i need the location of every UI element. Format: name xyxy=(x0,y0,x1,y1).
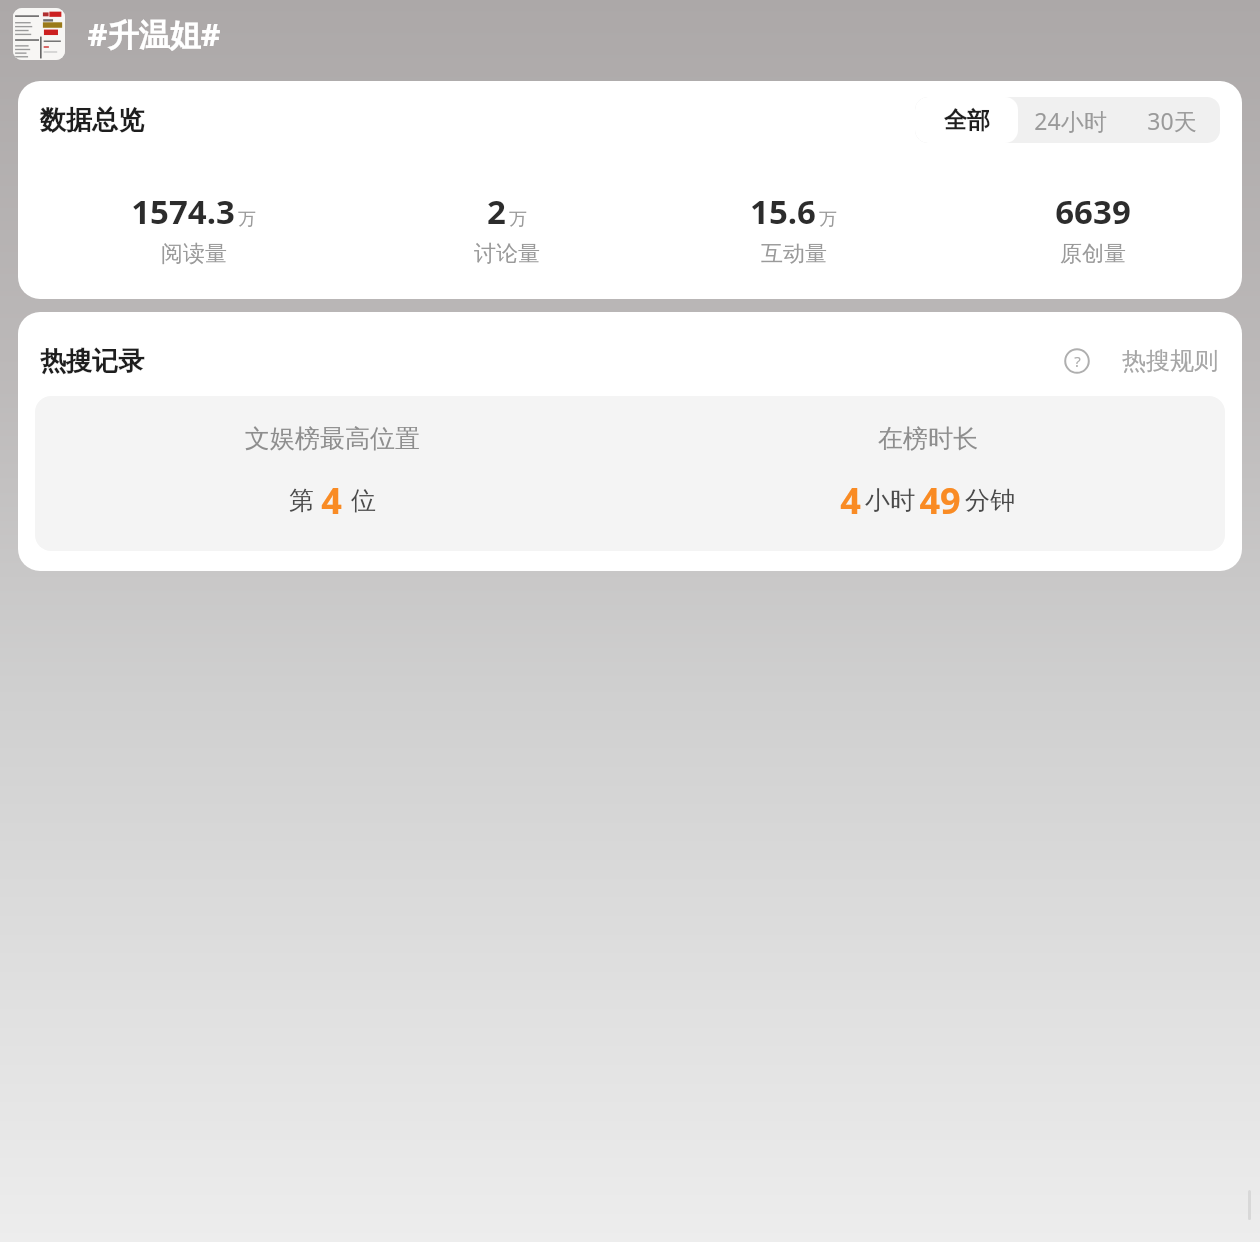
staticText: 4 xyxy=(321,476,342,525)
staticText: 2 xyxy=(487,189,506,234)
button[interactable]: 2 xyxy=(369,189,644,268)
staticText: 互动量 xyxy=(761,240,827,268)
staticText: 全部 xyxy=(944,106,990,135)
staticText: 4 xyxy=(840,476,861,525)
staticText: 在榜时长 xyxy=(878,423,978,454)
staticText: 阅读量 xyxy=(161,240,227,268)
staticText: 分钟 xyxy=(965,485,1015,516)
staticText: 讨论量 xyxy=(474,240,540,268)
staticText: 30天 xyxy=(1147,105,1197,136)
staticText: 小时 xyxy=(865,485,915,516)
staticText: 49 xyxy=(919,476,961,525)
staticText: 万 xyxy=(509,208,527,231)
staticText: #升温姐# xyxy=(87,13,221,55)
staticText: 数据总览 xyxy=(40,104,144,137)
staticText: 第 xyxy=(289,485,314,516)
staticText: 原创量 xyxy=(1060,240,1126,268)
staticText: 15.6 xyxy=(750,189,816,234)
staticText: ? xyxy=(1074,351,1081,371)
button[interactable]: 6639 xyxy=(943,189,1242,268)
staticText: 6639 xyxy=(1055,189,1131,234)
staticText: 热搜记录 xyxy=(40,345,144,378)
button[interactable]: 15.6 xyxy=(644,189,943,268)
staticText: 1574.3 xyxy=(131,189,235,234)
button[interactable]: 30天 xyxy=(1123,97,1220,143)
staticText: 热搜规则 xyxy=(1122,346,1218,376)
staticText: 文娱榜最高位置 xyxy=(245,423,420,454)
button[interactable]: Topic thumbnail xyxy=(13,8,65,60)
button[interactable]: ? xyxy=(1060,342,1222,380)
button[interactable]: 在榜时长 xyxy=(630,396,1225,551)
button[interactable]: 文娱榜最高位置 xyxy=(35,396,630,551)
staticText: 位 xyxy=(351,485,376,516)
button[interactable]: 1574.3 xyxy=(18,189,369,268)
staticText: 万 xyxy=(819,208,837,231)
button[interactable]: 24小时 xyxy=(1018,97,1123,143)
staticText: 万 xyxy=(238,208,256,231)
staticText: 24小时 xyxy=(1034,105,1107,136)
button[interactable]: 全部 xyxy=(915,97,1018,143)
